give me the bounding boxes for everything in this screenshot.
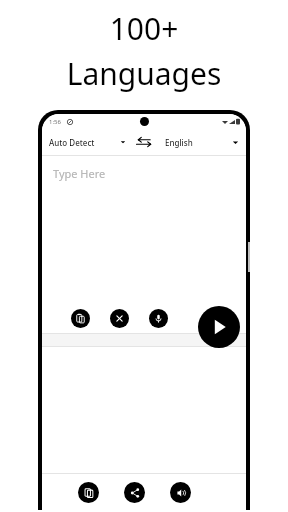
staticText: Auto Detect (49, 137, 95, 148)
button[interactable]: Paste (71, 309, 90, 328)
staticText: English (165, 137, 193, 148)
staticText: 1:56 (49, 118, 61, 126)
button[interactable]: Copy (78, 482, 99, 503)
button[interactable]: Clear (110, 309, 129, 328)
staticText: Type Here (53, 166, 106, 181)
staticText: 100+ (0, 8, 288, 49)
button[interactable]: Type Here (42, 156, 246, 303)
button[interactable]: Voice input (149, 309, 168, 328)
button[interactable]: Auto Detect (42, 137, 132, 148)
button[interactable]: Swap languages (132, 132, 156, 152)
button[interactable]: Speak (170, 482, 191, 503)
staticText: Languages (0, 53, 288, 94)
button[interactable]: Translate (198, 306, 240, 348)
button[interactable]: Share (124, 482, 145, 503)
button[interactable]: English (156, 137, 246, 148)
